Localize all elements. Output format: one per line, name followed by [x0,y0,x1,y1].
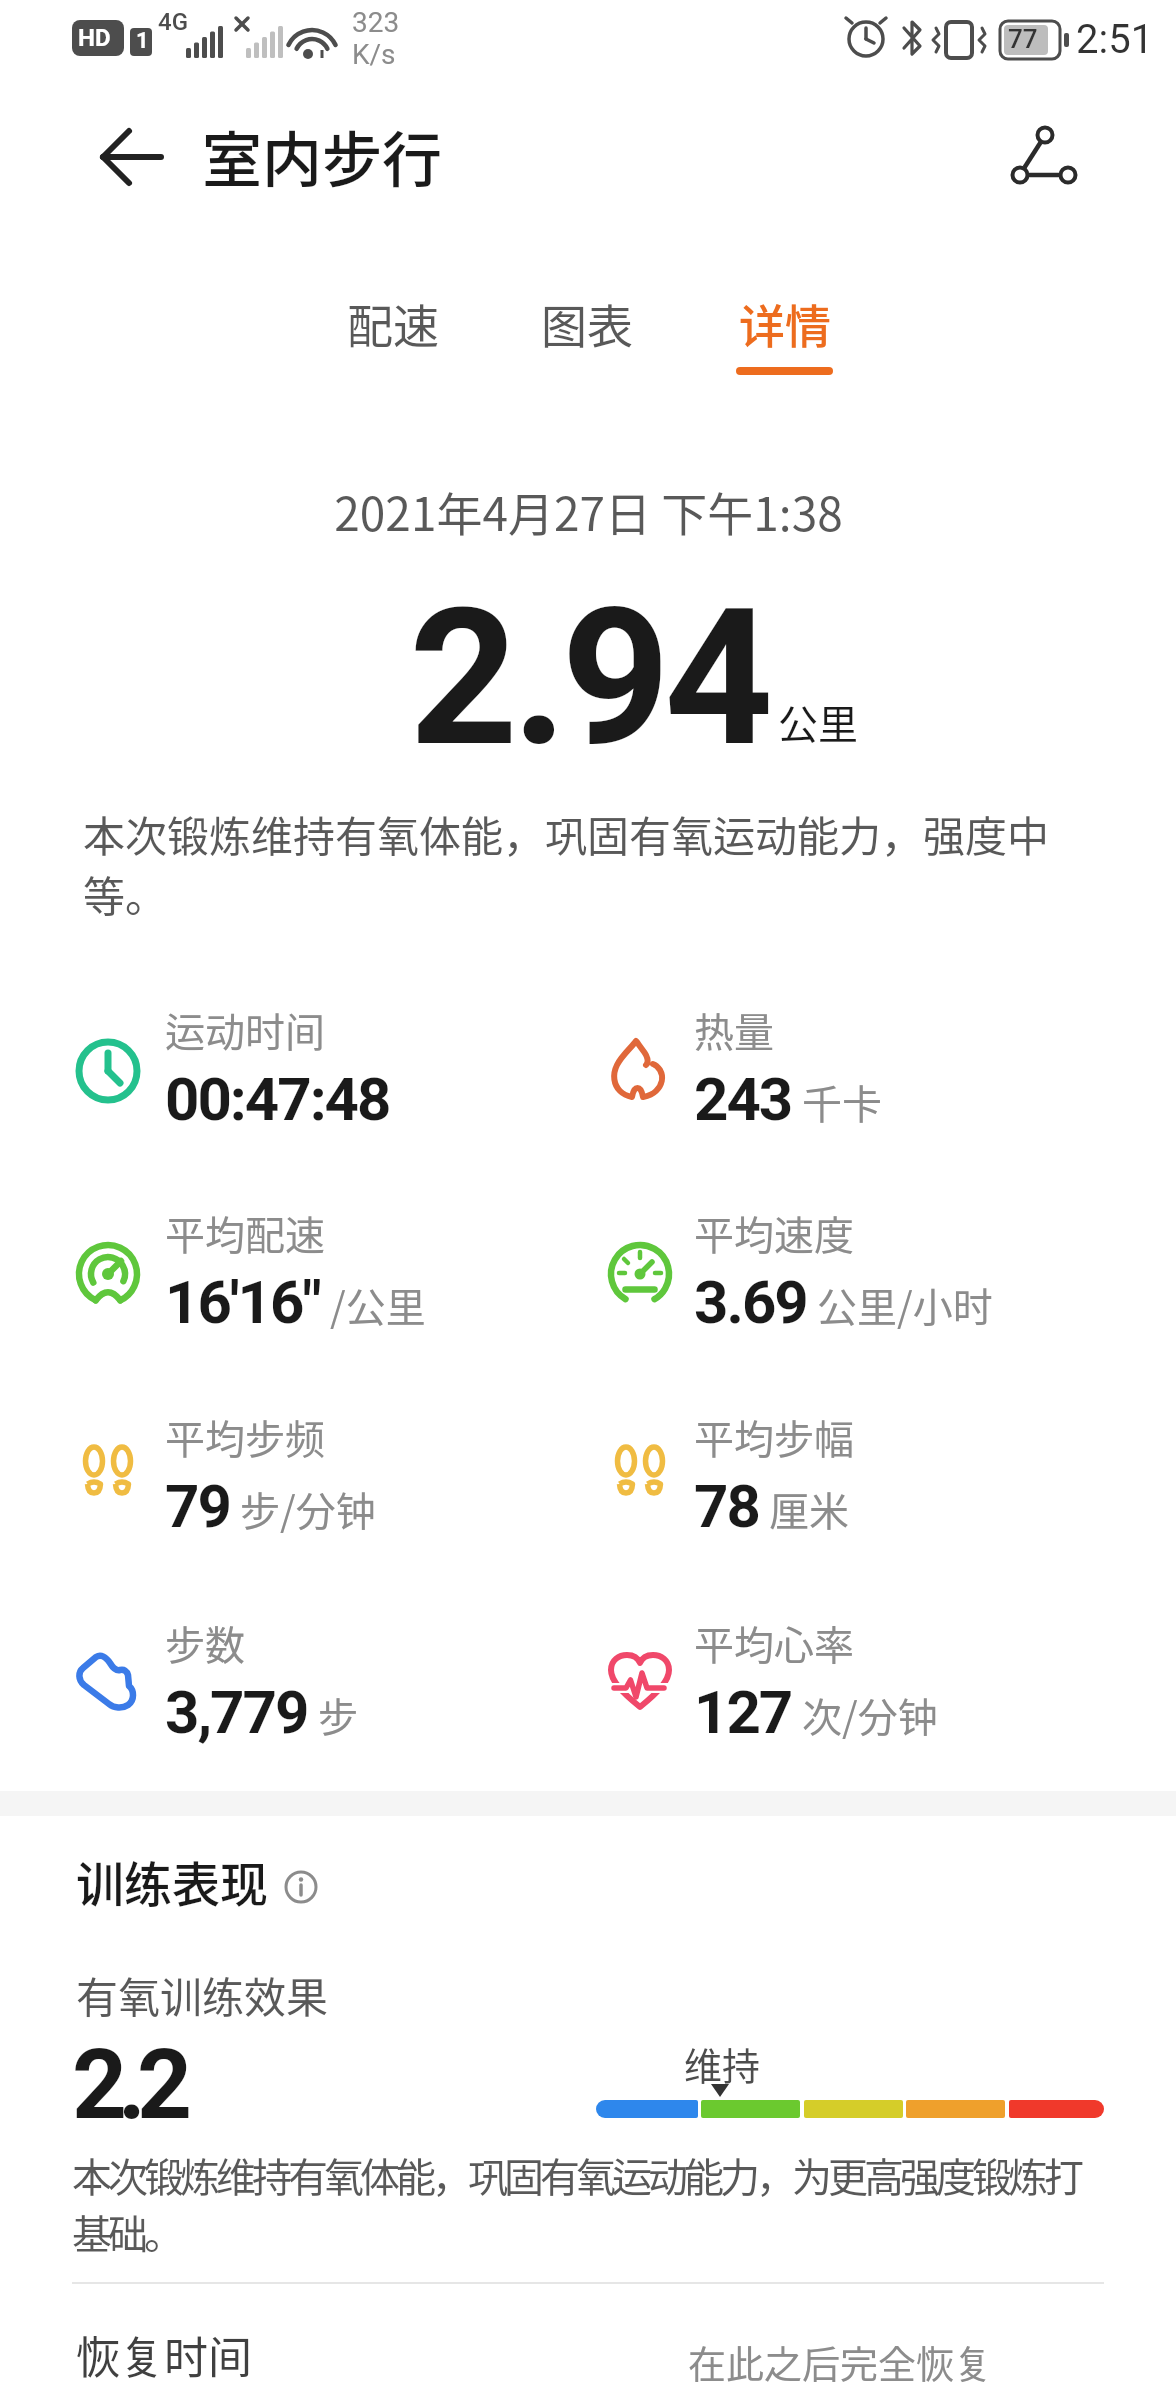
staticText: 有氧训练效果 [76,1964,329,2025]
staticText: 79 [165,1471,230,1541]
staticText: 3,779 [165,1677,308,1747]
staticText: 千卡 [802,1073,882,1131]
button[interactable]: 详情 [735,290,835,354]
staticText: 16'16" [165,1267,320,1337]
staticText: 1 [136,28,149,54]
staticText: 2.2 [72,2029,184,2142]
staticText: 2.94 [409,567,768,790]
staticText: 2021年4月27日 下午1:38 [334,478,843,545]
staticText: 平均步幅 [694,1408,854,1466]
staticText: 在此之后完全恢复 [688,2334,993,2389]
staticText: 323 [352,6,400,39]
staticText: 步数 [165,1614,245,1672]
staticText: 图表 [541,290,633,354]
staticText: 训练表现 [76,1846,269,1916]
staticText: 平均步频 [165,1408,325,1466]
staticText: HD [78,24,111,52]
button[interactable]: 图表 [537,290,637,354]
staticText: 次/分钟 [802,1686,938,1744]
staticText: 4G [158,8,188,36]
staticText: 本次锻炼维持有氧体能，巩固有氧运动能力，为更高强度锻炼打基础。 [72,2146,1084,2260]
staticText: 恢复时间 [76,2323,252,2387]
staticText: /公里 [330,1276,426,1334]
staticText: 运动时间 [165,1001,325,1059]
staticText: 热量 [694,1001,774,1059]
staticText: 厘米 [769,1480,849,1538]
button[interactable]: 配速 [343,290,443,354]
staticText: 平均速度 [694,1204,854,1262]
staticText: 公里/小时 [817,1276,993,1334]
staticText: 详情 [739,290,831,354]
staticText: 本次锻炼维持有氧体能，巩固有氧运动能力，强度中等。 [83,803,1073,924]
staticText: 平均心率 [694,1614,854,1672]
staticText: 维持 [684,2036,761,2091]
staticText: K/s [352,38,396,71]
staticText: 78 [694,1471,759,1541]
staticText: 平均配速 [165,1204,325,1262]
staticText: 步 [318,1686,358,1744]
staticText: 3.69 [694,1267,807,1337]
staticText: 公里 [778,693,858,751]
staticText: 2:51 [1076,16,1154,63]
staticText: 室内步行 [202,112,442,199]
button[interactable] [1000,115,1080,195]
button[interactable] [99,127,165,187]
staticText: 配速 [347,290,439,354]
staticText: 00:47:48 [165,1064,390,1134]
staticText: 步/分钟 [240,1480,376,1538]
staticText: 243 [694,1064,792,1134]
staticText: 127 [694,1677,792,1747]
staticText: 77 [1008,24,1038,54]
button[interactable] [283,1869,319,1905]
